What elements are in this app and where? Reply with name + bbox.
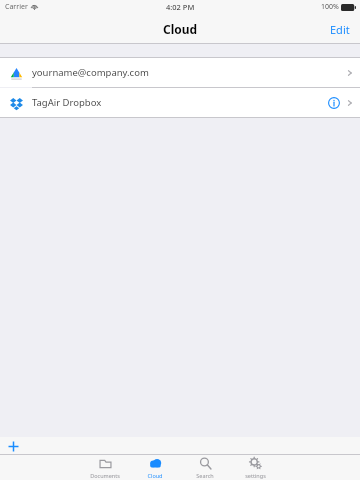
button[interactable]: Edit — [320, 14, 360, 44]
button[interactable]: Add — [0, 437, 26, 455]
button[interactable]: Cloud — [130, 455, 180, 480]
staticText: Documents — [90, 472, 120, 479]
staticText: Carrier — [5, 2, 28, 12]
button[interactable]: TagAir Dropbox — [0, 88, 360, 117]
button[interactable]: Search — [180, 455, 230, 480]
button[interactable]: settings — [230, 455, 280, 480]
staticText: Search — [196, 472, 214, 479]
staticText: yourname@company.com — [32, 66, 345, 79]
staticText: Cloud — [147, 472, 163, 479]
button[interactable]: Documents — [80, 455, 130, 480]
staticText: 100% — [321, 2, 339, 12]
button[interactable]: yourname@company.com — [0, 58, 360, 87]
staticText: settings — [245, 472, 266, 479]
button[interactable]: Info — [326, 95, 342, 111]
staticText: Cloud — [163, 21, 198, 37]
staticText: TagAir Dropbox — [32, 96, 326, 109]
staticText: Edit — [330, 22, 350, 37]
staticText: 4:02 PM — [166, 2, 195, 12]
